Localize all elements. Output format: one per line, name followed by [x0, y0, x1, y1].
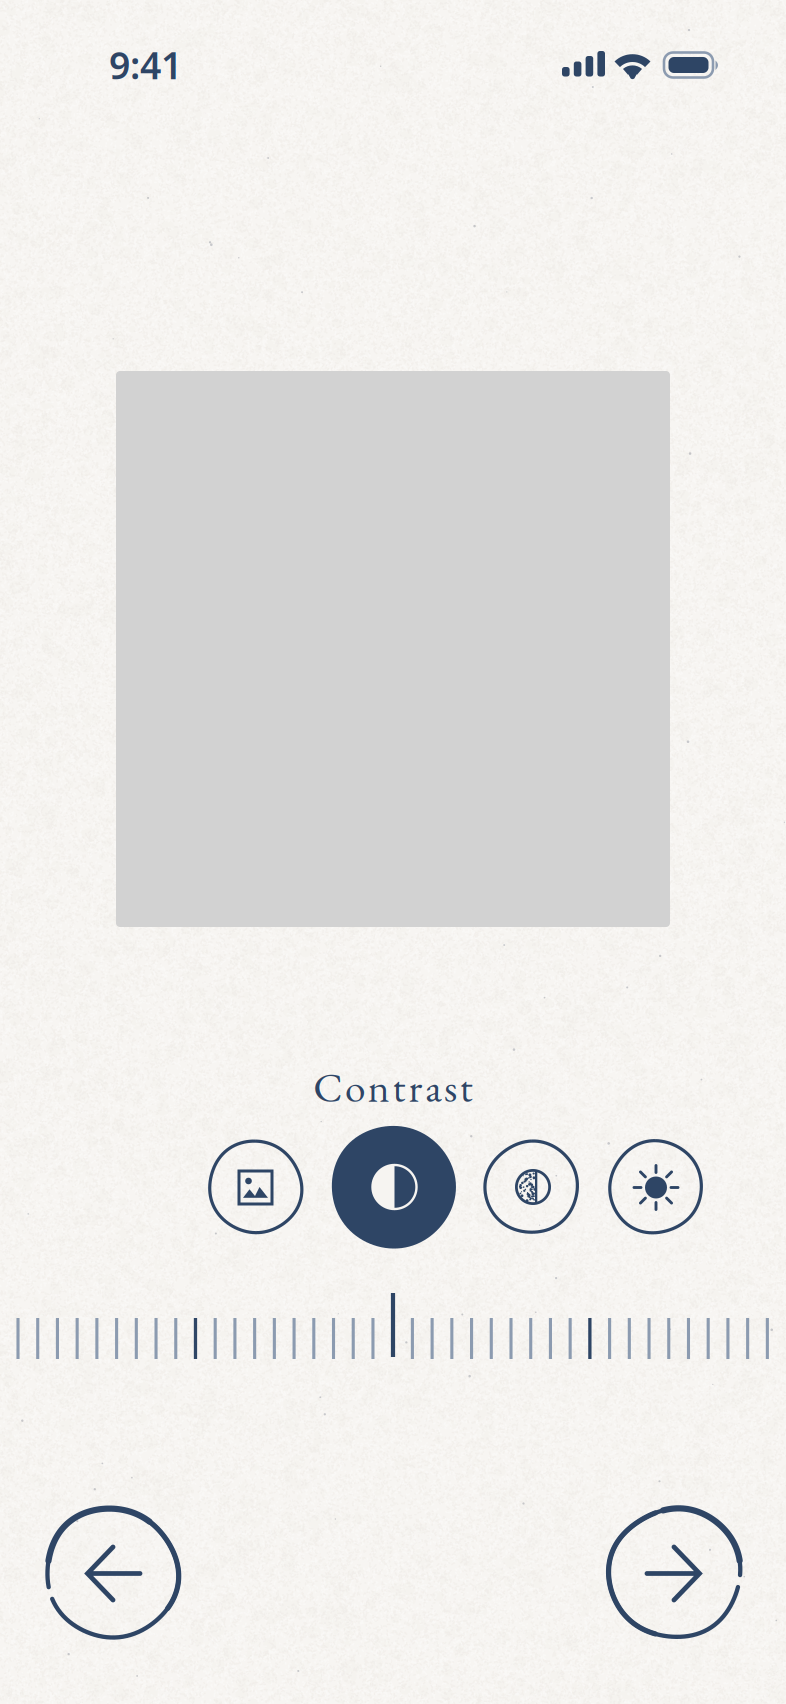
staticText: Contrast	[313, 1060, 473, 1114]
button[interactable]: Contrast	[331, 1124, 456, 1249]
button[interactable]: Next	[607, 1505, 743, 1641]
button[interactable]: Brightness	[608, 1139, 703, 1234]
staticText: 9:41	[109, 40, 182, 90]
button[interactable]: Back	[44, 1505, 180, 1641]
button[interactable]: Grain	[484, 1139, 579, 1234]
button[interactable]: Photo	[208, 1139, 303, 1234]
